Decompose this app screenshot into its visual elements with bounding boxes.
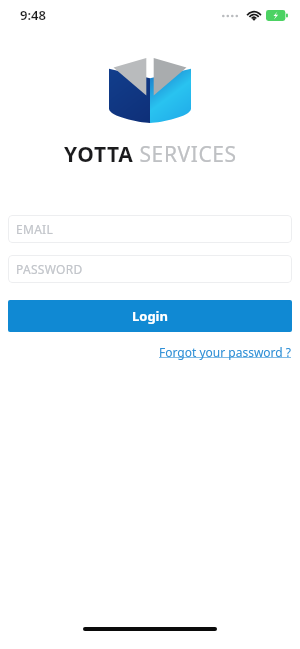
staticText: PASSWORD [16, 261, 83, 277]
staticText: 9:48 [20, 6, 46, 24]
staticText: Login [132, 307, 168, 325]
staticText: EMAIL [16, 221, 54, 237]
staticText: Forgot your password ? [159, 344, 292, 360]
button[interactable]: Login [8, 300, 292, 332]
button[interactable]: PASSWORD [8, 255, 292, 283]
staticText: YOTTA SERVICES [64, 140, 237, 169]
button[interactable]: Forgot your password ? [159, 342, 292, 362]
button[interactable]: EMAIL [8, 215, 292, 243]
